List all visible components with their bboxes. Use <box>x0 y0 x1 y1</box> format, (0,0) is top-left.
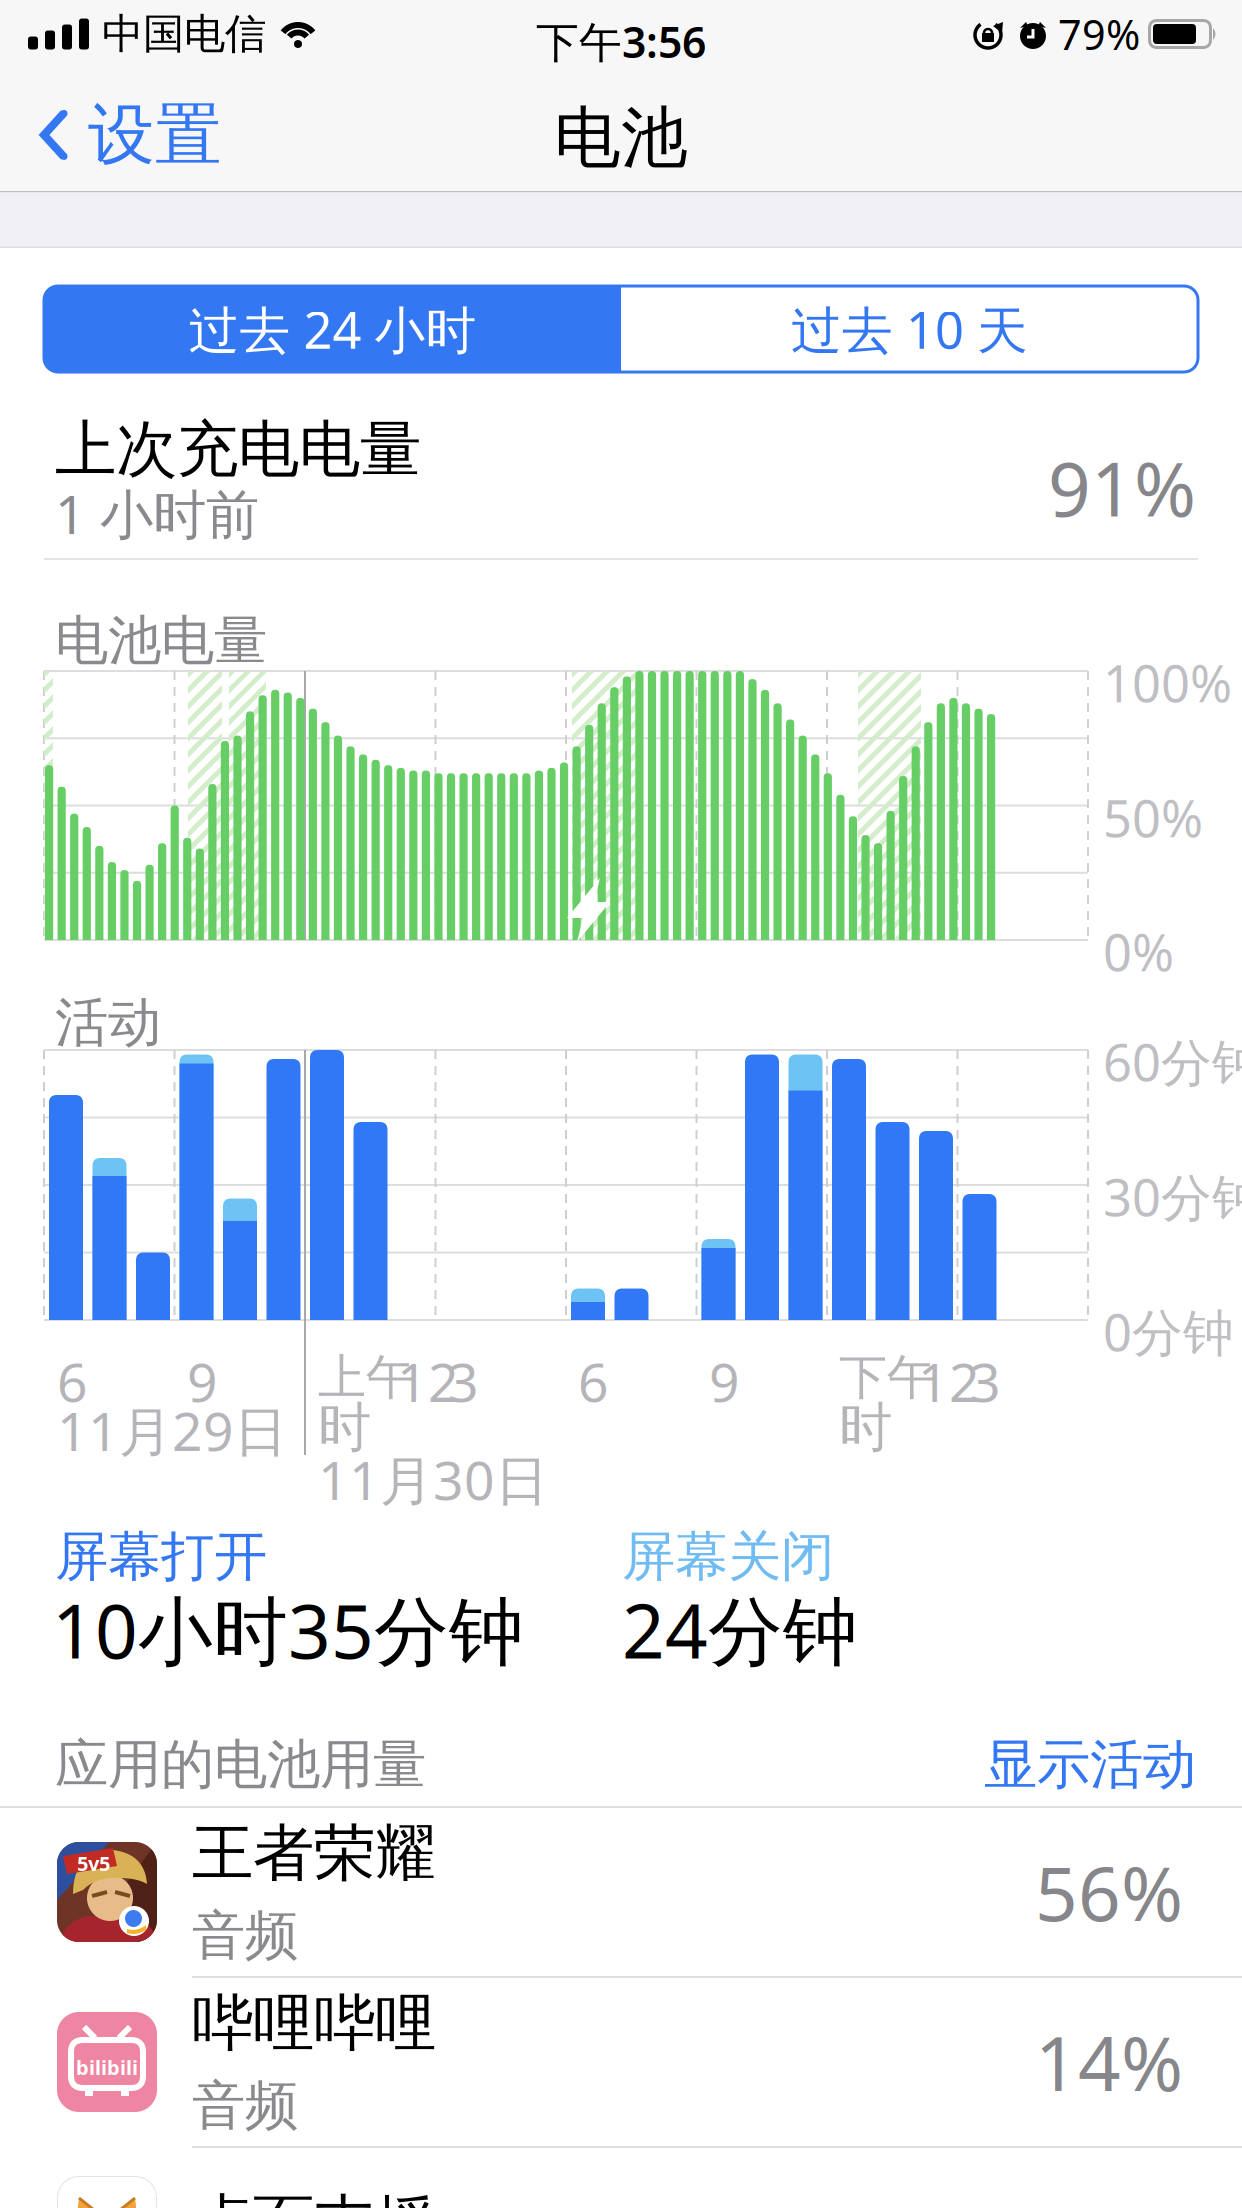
button[interactable]: 显示活动 <box>984 1732 1196 1797</box>
staticText: 10小时35分钟 <box>52 1580 524 1679</box>
staticText: 12 <box>397 1346 459 1417</box>
staticText: 3 <box>448 1346 479 1417</box>
staticText: 下午3:56 <box>536 13 706 70</box>
staticText: 79% <box>1058 7 1140 61</box>
staticText: 11月30日 <box>318 1444 548 1515</box>
staticText: 时 <box>839 1395 892 1460</box>
staticText: 设置 <box>88 94 222 176</box>
staticText: 过去 24 小时 <box>188 295 476 363</box>
staticText: 11月29日 <box>57 1395 287 1466</box>
staticText: 60分钟 <box>1103 1028 1242 1095</box>
staticText: 电池电量 <box>55 608 267 673</box>
staticText: 9 <box>709 1346 740 1417</box>
button[interactable]: bilibili <box>0 1978 1242 2146</box>
staticText: 应用的电池用量 <box>55 1732 426 1797</box>
staticText: 1 小时前 <box>55 478 259 549</box>
button[interactable]: 桌面支援 <box>0 2148 1242 2208</box>
staticText: 屏幕关闭 <box>622 1524 834 1589</box>
staticText: 音频 <box>192 2073 298 2138</box>
staticText: 91% <box>1048 438 1196 537</box>
staticText: bilibili <box>76 2054 138 2081</box>
staticText: 12 <box>918 1346 980 1417</box>
staticText: 下午 <box>839 1348 935 1407</box>
staticText: 上次充电电量 <box>55 412 421 487</box>
staticText: 桌面支援 <box>192 2186 436 2208</box>
button[interactable]: 返回设置 <box>38 94 222 176</box>
staticText: 6 <box>578 1346 609 1417</box>
staticText: 显示活动 <box>984 1732 1196 1797</box>
staticText: 中国电信 <box>102 9 266 59</box>
staticText: 56% <box>1035 1842 1183 1942</box>
button[interactable]: 5v5 <box>0 1808 1242 1976</box>
staticText: 3 <box>970 1346 1001 1417</box>
staticText: 屏幕打开 <box>55 1524 267 1589</box>
staticText: 100% <box>1103 649 1232 716</box>
button[interactable]: 过去 24 小时 <box>44 286 621 372</box>
button[interactable]: 过去 10 天 <box>621 286 1198 372</box>
staticText: 王者荣耀 <box>192 1816 436 1891</box>
staticText: 6 <box>57 1346 88 1417</box>
staticText: 14% <box>1035 2012 1183 2112</box>
staticText: 24分钟 <box>622 1580 858 1679</box>
staticText: 过去 10 天 <box>791 295 1028 363</box>
staticText: 0% <box>1103 918 1174 985</box>
staticText: 时 <box>318 1395 371 1460</box>
staticText: 0分钟 <box>1103 1298 1234 1365</box>
staticText: 上午 <box>318 1348 414 1407</box>
staticText: 音频 <box>192 1903 298 1968</box>
staticText: 9 <box>187 1346 218 1417</box>
staticText: 50% <box>1103 784 1203 851</box>
staticText: 哔哩哔哩 <box>192 1986 436 2061</box>
staticText: 活动 <box>55 990 161 1055</box>
staticText: 电池 <box>554 97 688 179</box>
staticText: 30分钟 <box>1103 1163 1242 1230</box>
staticText: 5v5 <box>77 1850 110 1877</box>
